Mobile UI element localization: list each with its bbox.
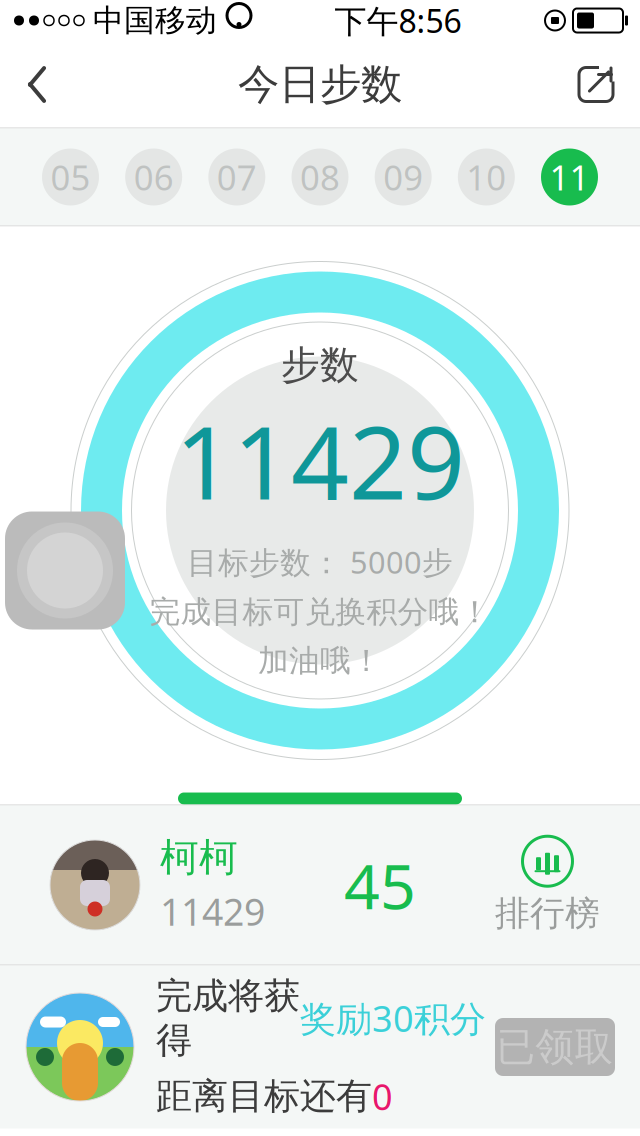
- staticText: 0: [372, 1072, 393, 1120]
- button[interactable]: 09: [375, 148, 432, 205]
- staticText: 已领取: [496, 1023, 613, 1071]
- button[interactable]: 柯柯: [0, 805, 640, 964]
- button[interactable]: 06: [125, 148, 182, 205]
- button[interactable]: 已领取: [495, 1018, 615, 1076]
- staticText: 下午8:56: [334, 0, 461, 42]
- button[interactable]: Back: [0, 46, 74, 122]
- staticText: 排行榜: [495, 892, 600, 935]
- staticText: 柯柯: [160, 834, 238, 881]
- staticText: 加油哦！: [258, 642, 382, 680]
- button[interactable]: 05: [42, 148, 99, 205]
- staticText: 05: [50, 154, 90, 200]
- staticText: 08: [300, 154, 340, 200]
- staticText: 完成目标可兑换积分哦！: [149, 593, 490, 631]
- staticText: 45: [344, 843, 416, 927]
- staticText: 目标步数： 5000步: [187, 541, 453, 582]
- staticText: 10: [466, 154, 506, 200]
- staticText: 11: [549, 154, 589, 200]
- staticText: 07: [217, 154, 257, 200]
- button[interactable]: 10: [458, 148, 515, 205]
- staticText: 09: [383, 154, 423, 200]
- button[interactable]: Share: [552, 46, 640, 122]
- button[interactable]: 07: [208, 148, 265, 205]
- button[interactable]: 08: [291, 148, 348, 205]
- staticText: 11429: [160, 886, 265, 936]
- staticText: 步数: [281, 341, 359, 389]
- staticText: 06: [134, 154, 174, 200]
- staticText: 距离目标还有: [156, 1074, 372, 1118]
- staticText: 奖励30积分: [300, 994, 486, 1042]
- staticText: 完成将获得: [156, 974, 300, 1062]
- staticText: 今日步数: [238, 59, 402, 110]
- button[interactable]: Start recording: [5, 511, 125, 629]
- staticText: 11429: [175, 393, 465, 527]
- staticText: 中国移动: [93, 2, 217, 39]
- button[interactable]: 11: [541, 148, 598, 205]
